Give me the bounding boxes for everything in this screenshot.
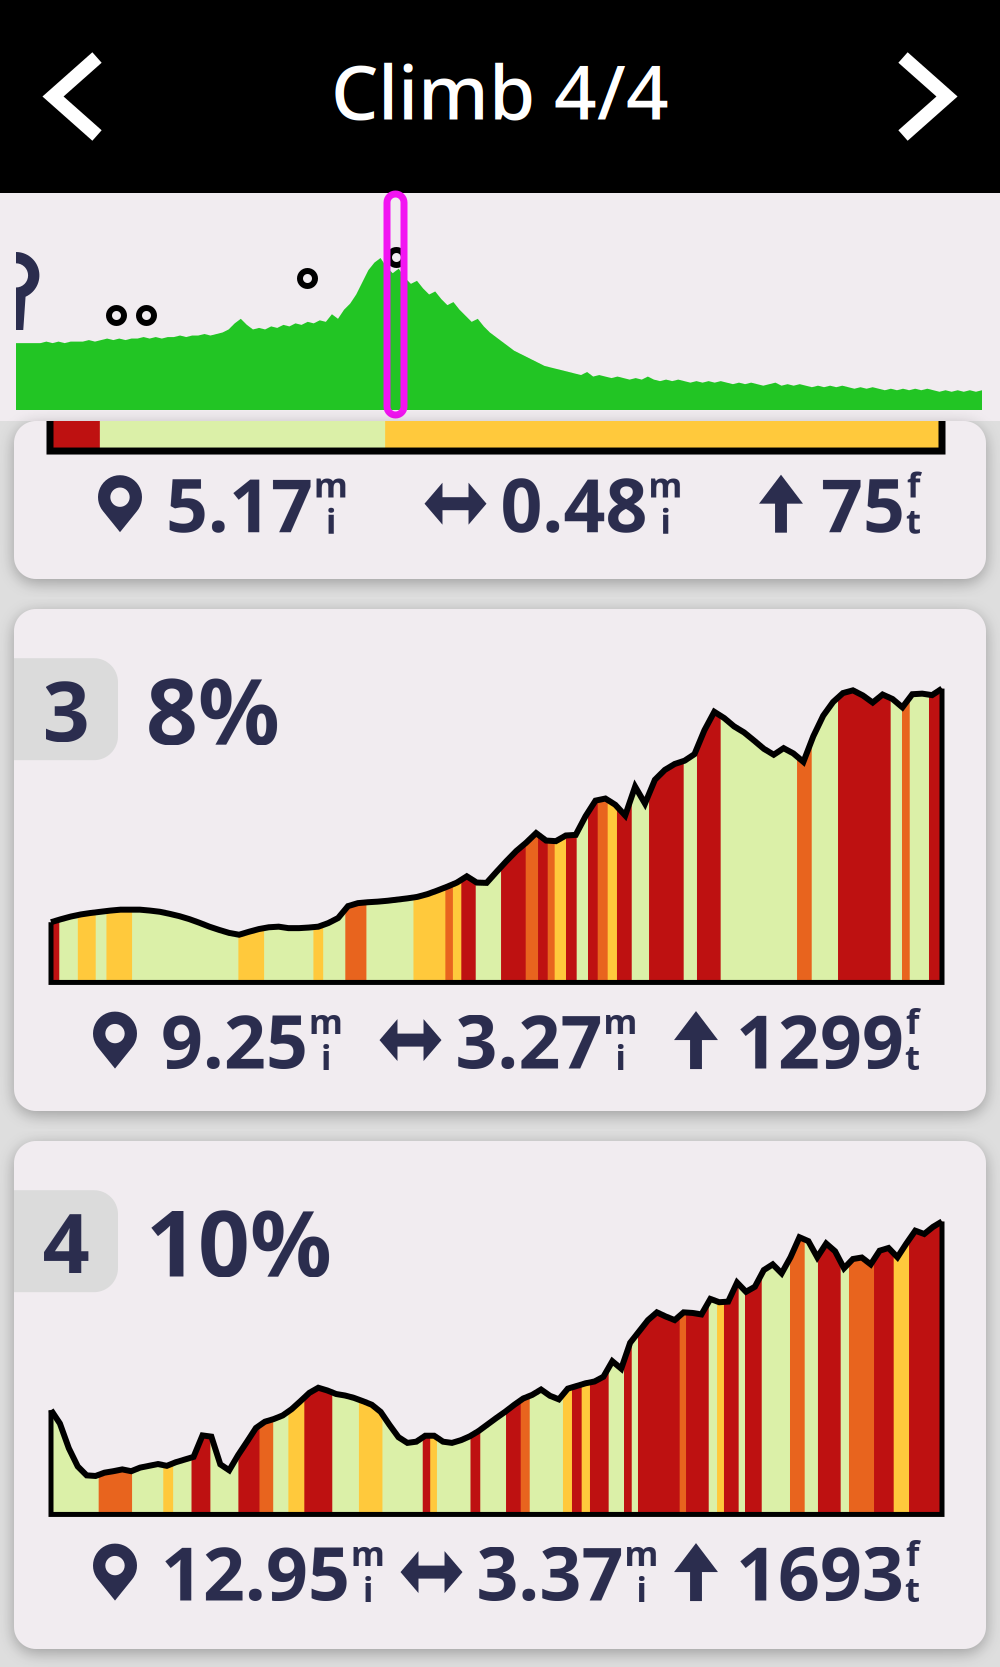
staticText: 8% <box>146 649 280 769</box>
staticText: t <box>905 1566 920 1612</box>
staticText: f <box>906 998 919 1044</box>
staticText: i <box>363 1566 373 1612</box>
staticText: i <box>321 1034 331 1080</box>
staticText: 4 <box>42 1186 89 1296</box>
button[interactable]: 3 <box>14 609 986 1111</box>
staticText: 3 <box>42 654 89 764</box>
staticText: 0.48 <box>500 455 647 552</box>
staticText: 75 <box>821 455 905 552</box>
staticText: m <box>351 1530 385 1576</box>
staticText: m <box>603 998 637 1044</box>
staticText: t <box>905 1034 920 1080</box>
staticText: i <box>660 497 670 543</box>
staticText: 3.27 <box>455 991 602 1089</box>
staticText: i <box>615 1034 625 1080</box>
staticText: 5.17 <box>166 455 313 552</box>
staticText: t <box>906 497 921 543</box>
staticText: m <box>309 998 343 1044</box>
staticText: 1693 <box>736 1523 904 1621</box>
staticText: m <box>624 1530 658 1576</box>
staticText: f <box>907 461 920 507</box>
staticText: 12.95 <box>161 1523 350 1621</box>
button[interactable]: 4 <box>14 1141 986 1649</box>
staticText: m <box>648 461 682 507</box>
button[interactable]: Next climb <box>863 0 1000 193</box>
staticText: 3.37 <box>476 1523 623 1621</box>
staticText: i <box>326 497 336 543</box>
staticText: f <box>906 1530 919 1576</box>
staticText: i <box>636 1566 646 1612</box>
staticText: m <box>314 461 348 507</box>
staticText: 10% <box>146 1181 332 1301</box>
staticText: 9.25 <box>161 991 308 1089</box>
staticText: 1299 <box>736 991 904 1089</box>
button[interactable]: Previous climb <box>0 0 137 193</box>
staticText: Climb 4/4 <box>331 41 669 140</box>
